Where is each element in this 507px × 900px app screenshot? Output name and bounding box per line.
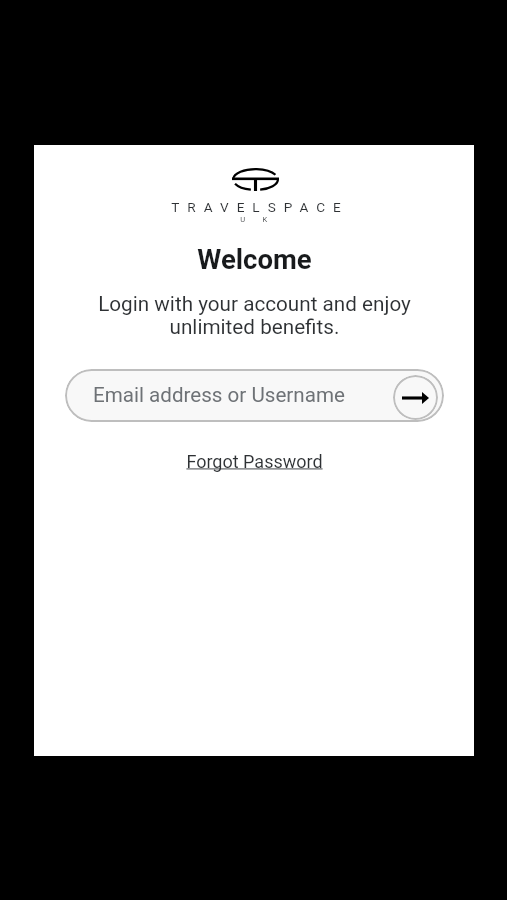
staticText: Forgot Password (186, 451, 323, 472)
button[interactable]: Email address or Username (65, 369, 444, 422)
staticText: Email address or Username (93, 383, 345, 407)
button[interactable]: Forgot Password (176, 445, 333, 478)
button[interactable]: Continue (393, 375, 438, 420)
staticText: TRAVELSPACE (171, 199, 349, 215)
staticText: Login with your account and enjoy unlimi… (98, 292, 411, 339)
staticText: UK (240, 215, 285, 224)
staticText: Welcome (197, 243, 312, 275)
